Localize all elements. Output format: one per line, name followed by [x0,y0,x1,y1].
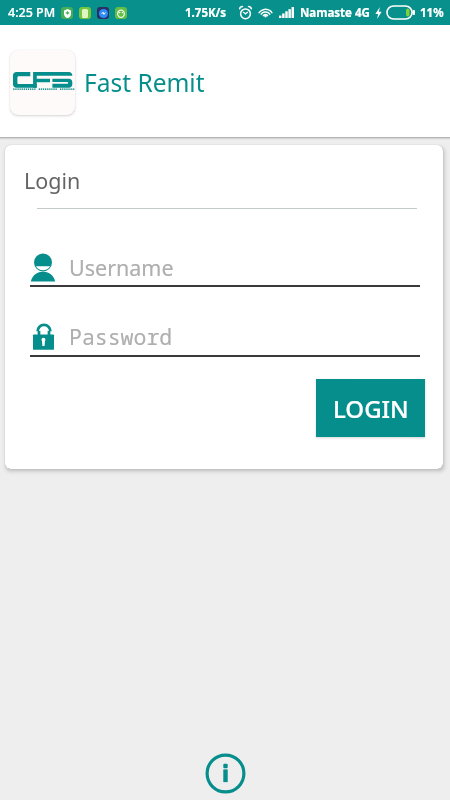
staticText: 4:25 PM [8,4,56,21]
staticText: 1.75K/s [185,5,227,21]
staticText: 11% [420,5,444,21]
button[interactable]: Password [30,318,420,357]
staticText: Username [69,253,174,282]
button[interactable]: Username [30,249,420,287]
staticText: Namaste 4G [300,5,370,21]
button[interactable]: Info [203,751,248,796]
staticText: LOGIN [333,392,409,425]
staticText: Password [69,322,173,351]
button[interactable]: LOGIN [316,379,425,437]
staticText: Fast Remit [84,66,205,99]
staticText: Login [24,166,81,195]
